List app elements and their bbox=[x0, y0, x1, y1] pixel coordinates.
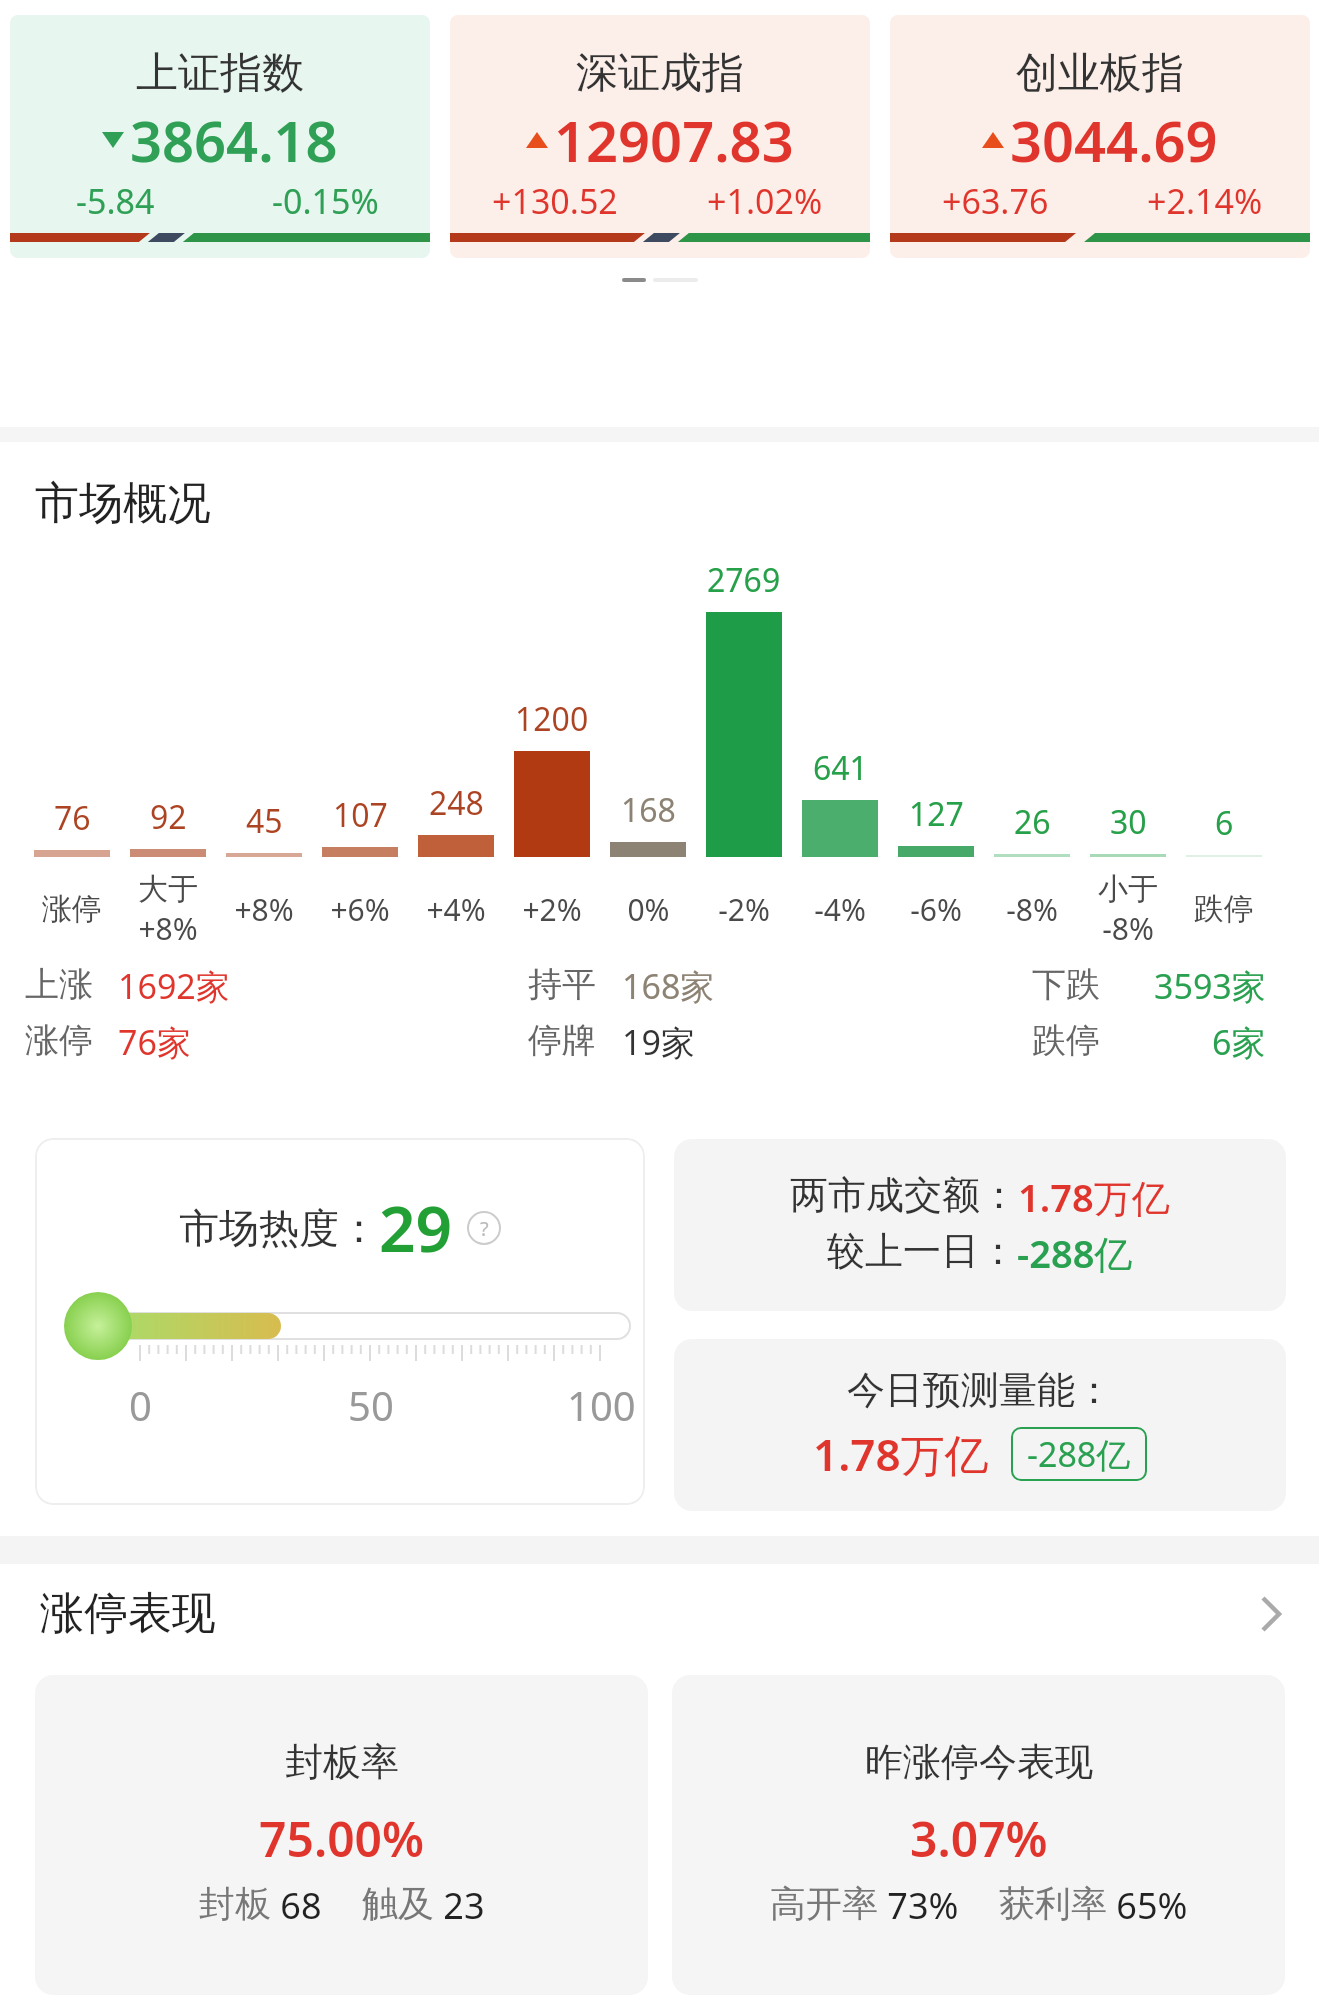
staticText: 168家 bbox=[622, 963, 715, 1009]
staticText: 深证成指 bbox=[576, 47, 744, 100]
staticText: +6% bbox=[330, 889, 390, 930]
staticText: 1.78万亿 bbox=[813, 1424, 989, 1484]
staticText: 较上一日： bbox=[827, 1227, 1017, 1275]
staticText: 封板率 bbox=[285, 1738, 399, 1786]
staticText: 跌停 bbox=[1032, 1019, 1100, 1062]
staticText: ? bbox=[480, 1215, 489, 1242]
staticText: 大于 +8% bbox=[138, 870, 198, 949]
staticText: 107 bbox=[333, 793, 388, 837]
button[interactable]: 市场热度： bbox=[35, 1138, 645, 1505]
staticText: 641 bbox=[813, 746, 868, 790]
staticText: 停牌 bbox=[528, 1019, 596, 1062]
staticText: 持平 bbox=[528, 963, 596, 1006]
staticText: 76家 bbox=[118, 1019, 191, 1065]
staticText: 1692家 bbox=[118, 963, 230, 1009]
button[interactable]: 昨涨停今表现 bbox=[672, 1675, 1285, 1995]
staticText: 昨涨停今表现 bbox=[865, 1738, 1093, 1786]
staticText: 涨停表现 bbox=[40, 1586, 216, 1641]
staticText: 创业板指 bbox=[1016, 47, 1184, 100]
staticText: 下跌 bbox=[1032, 963, 1100, 1006]
staticText: 45 bbox=[246, 799, 283, 843]
staticText: 19家 bbox=[622, 1019, 695, 1065]
staticText: 市场热度： bbox=[179, 1203, 379, 1253]
staticText: 触及 bbox=[362, 1881, 434, 1926]
staticText: -288亿 bbox=[1027, 1431, 1131, 1477]
staticText: 涨停 bbox=[25, 1019, 93, 1062]
staticText: 248 bbox=[429, 781, 484, 825]
staticText: 上涨 bbox=[25, 963, 93, 1006]
staticText: 小于 -8% bbox=[1098, 870, 1158, 949]
staticText: 29 bbox=[379, 1184, 453, 1271]
staticText: +130.52 bbox=[492, 178, 618, 224]
button[interactable]: 涨停表现 bbox=[40, 1586, 1281, 1641]
staticText: 6 bbox=[1215, 801, 1234, 845]
staticText: 封板 bbox=[199, 1881, 271, 1926]
staticText: 两市成交额： bbox=[790, 1171, 1018, 1219]
staticText: 市场概况 bbox=[35, 476, 211, 531]
button[interactable]: 今日预测量能： bbox=[674, 1339, 1286, 1511]
staticText: 3864.18 bbox=[130, 102, 338, 178]
staticText: -5.84 bbox=[76, 178, 155, 224]
staticText: 26 bbox=[1014, 800, 1051, 844]
staticText: 上证指数 bbox=[136, 47, 304, 100]
button[interactable]: 上证指数 bbox=[10, 15, 430, 258]
button[interactable]: 封板率 bbox=[35, 1675, 648, 1995]
staticText: +2.14% bbox=[1147, 178, 1263, 224]
staticText: 6家 bbox=[1212, 1019, 1266, 1065]
staticText: 68 bbox=[271, 1881, 322, 1930]
staticText: 65% bbox=[1107, 1881, 1188, 1930]
staticText: -6% bbox=[910, 889, 962, 930]
staticText: 127 bbox=[909, 792, 964, 836]
staticText: 92 bbox=[150, 795, 187, 839]
staticText: 3593家 bbox=[1154, 963, 1266, 1009]
staticText: 50 bbox=[348, 1378, 394, 1432]
staticText: 3.07% bbox=[910, 1806, 1048, 1871]
staticText: 1.78万亿 bbox=[1018, 1171, 1170, 1223]
staticText: 100 bbox=[567, 1378, 636, 1432]
staticText: 3044.69 bbox=[1010, 102, 1218, 178]
staticText: +4% bbox=[426, 889, 486, 930]
staticText: -2% bbox=[718, 889, 770, 930]
staticText: 75.00% bbox=[259, 1806, 425, 1871]
staticText: 今日预测量能： bbox=[847, 1366, 1113, 1414]
staticText: 获利率 bbox=[999, 1881, 1107, 1926]
staticText: -8% bbox=[1006, 889, 1058, 930]
staticText: 30 bbox=[1110, 800, 1147, 844]
staticText: 0 bbox=[129, 1378, 152, 1432]
staticText: +63.76 bbox=[942, 178, 1049, 224]
button[interactable]: 深证成指 bbox=[450, 15, 870, 258]
staticText: -0.15% bbox=[272, 178, 379, 224]
staticText: 涨停 bbox=[42, 890, 102, 928]
staticText: 高开率 bbox=[770, 1881, 878, 1926]
staticText: 23 bbox=[434, 1881, 485, 1930]
staticText: 2769 bbox=[707, 558, 781, 602]
staticText: +1.02% bbox=[707, 178, 823, 224]
staticText: -4% bbox=[814, 889, 866, 930]
staticText: 跌停 bbox=[1194, 890, 1254, 928]
staticText: 76 bbox=[54, 796, 91, 840]
staticText: +8% bbox=[234, 889, 294, 930]
staticText: +2% bbox=[522, 889, 582, 930]
button[interactable]: 创业板指 bbox=[890, 15, 1310, 258]
staticText: 73% bbox=[878, 1881, 959, 1930]
staticText: 168 bbox=[621, 788, 676, 832]
staticText: 1200 bbox=[515, 697, 589, 741]
staticText: 0% bbox=[627, 889, 670, 930]
button[interactable]: 两市成交额： bbox=[674, 1139, 1286, 1311]
staticText: 12907.83 bbox=[554, 102, 794, 178]
staticText: -288亿 bbox=[1017, 1227, 1133, 1279]
